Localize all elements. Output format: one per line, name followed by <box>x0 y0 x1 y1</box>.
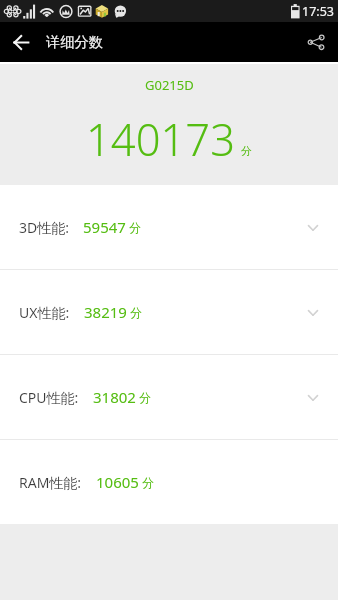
button[interactable]: Share <box>302 22 338 62</box>
staticText: 3D性能: <box>19 218 69 237</box>
staticText: 分 <box>142 475 154 490</box>
button[interactable]: Back <box>0 22 38 62</box>
button[interactable]: CPU性能: <box>0 355 338 439</box>
staticText: 分 <box>241 144 252 158</box>
staticText: RAM性能: <box>19 473 82 492</box>
staticText: 分 <box>139 390 151 405</box>
staticText: 59547 <box>83 217 126 237</box>
staticText: 详细分数 <box>46 33 103 51</box>
staticText: 31802 <box>93 387 136 407</box>
staticText: CPU性能: <box>19 388 79 407</box>
button[interactable]: RAM性能: <box>0 440 338 524</box>
button[interactable]: 3D性能: <box>0 185 338 269</box>
staticText: 38219 <box>84 302 127 322</box>
button[interactable]: UX性能: <box>0 270 338 354</box>
staticText: 分 <box>130 305 142 320</box>
staticText: 140173 <box>86 109 236 168</box>
staticText: 10605 <box>96 472 139 492</box>
staticText: G0215D <box>145 76 194 94</box>
staticText: 分 <box>129 220 141 235</box>
staticText: UX性能: <box>19 303 70 322</box>
staticText: 17:53 <box>302 3 334 20</box>
